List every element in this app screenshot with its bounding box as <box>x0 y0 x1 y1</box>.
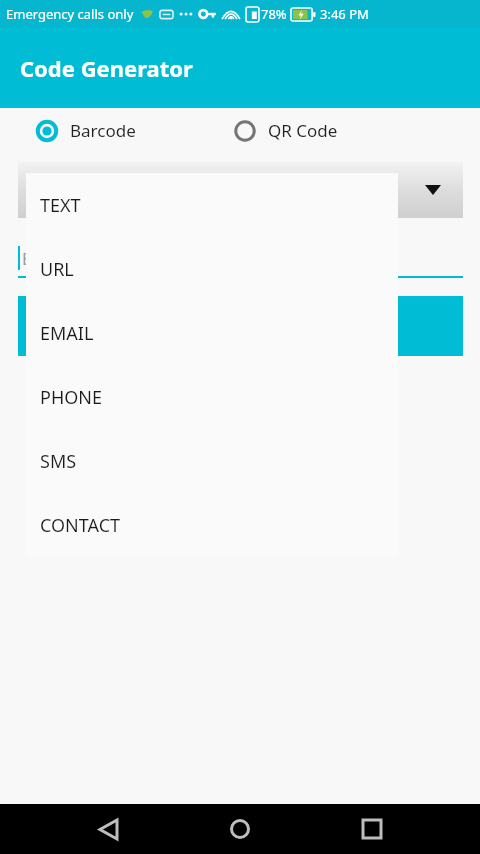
button[interactable]: URL <box>26 237 398 301</box>
staticText: 3:46 PM <box>320 5 369 23</box>
button[interactable]: SMS <box>26 429 398 493</box>
staticText: Code Generator <box>20 53 193 83</box>
staticText: CONTACT <box>40 513 121 538</box>
staticText: QR Code <box>268 119 338 142</box>
staticText: PHONE <box>40 385 102 410</box>
staticText: Barcode <box>70 119 136 142</box>
button[interactable]: Recent apps <box>348 805 396 853</box>
staticText: SMS <box>40 449 77 474</box>
button[interactable]: TEXT <box>18 162 463 218</box>
staticText: TEXT <box>34 179 73 202</box>
button[interactable]: GENERATE <box>18 296 463 356</box>
staticText: TEXT <box>40 193 81 218</box>
staticText: Emergency calls only <box>6 5 134 23</box>
staticText: Enter text <box>22 247 100 270</box>
button[interactable]: PHONE <box>26 365 398 429</box>
staticText: EMAIL <box>40 321 94 346</box>
button[interactable]: TEXT <box>26 173 398 237</box>
button[interactable]: Barcode <box>36 119 136 142</box>
button[interactable]: CONTACT <box>26 493 398 557</box>
button[interactable]: EMAIL <box>26 301 398 365</box>
staticText: 78% <box>261 5 287 23</box>
staticText: URL <box>40 257 74 282</box>
button[interactable]: Back <box>84 805 132 853</box>
button[interactable]: QR Code <box>234 119 338 142</box>
button[interactable]: Home <box>216 805 264 853</box>
